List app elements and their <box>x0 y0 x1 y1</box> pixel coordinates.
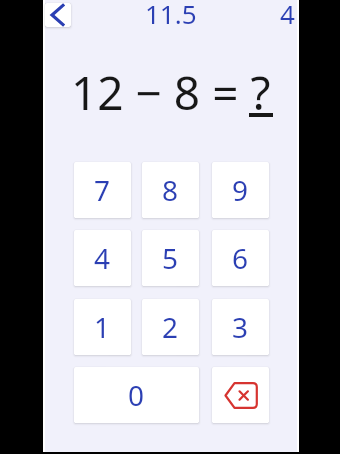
button[interactable]: 5 <box>142 230 199 286</box>
button[interactable]: 4 <box>74 230 131 286</box>
staticText: 9 <box>232 171 249 209</box>
button[interactable]: 7 <box>74 162 131 218</box>
button[interactable]: 9 <box>212 162 269 218</box>
staticText: 4 <box>280 0 295 26</box>
button[interactable] <box>212 367 269 423</box>
staticText: 11.5 <box>145 0 197 26</box>
button[interactable]: 8 <box>142 162 199 218</box>
button[interactable]: 3 <box>212 299 269 355</box>
staticText: 5 <box>162 239 179 277</box>
staticText: 0 <box>128 376 145 414</box>
button[interactable]: 1 <box>74 299 131 355</box>
staticText: 1 <box>94 308 111 346</box>
staticText: 2 <box>162 308 179 346</box>
button[interactable]: 2 <box>142 299 199 355</box>
button[interactable]: 6 <box>212 230 269 286</box>
staticText: 8 <box>162 171 179 209</box>
staticText: 3 <box>232 308 249 346</box>
staticText: 7 <box>94 171 111 209</box>
staticText: 4 <box>94 239 111 277</box>
button[interactable] <box>45 3 71 27</box>
staticText: 12 − 8 = ? <box>71 61 271 124</box>
staticText: 6 <box>232 239 249 277</box>
button[interactable]: 0 <box>74 367 199 423</box>
